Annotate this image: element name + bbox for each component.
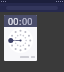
button[interactable]: 00 — [8, 15, 19, 27]
staticText: : — [19, 15, 22, 27]
button[interactable]: 00 — [22, 15, 33, 27]
button[interactable]: Clock face — [8, 28, 33, 53]
